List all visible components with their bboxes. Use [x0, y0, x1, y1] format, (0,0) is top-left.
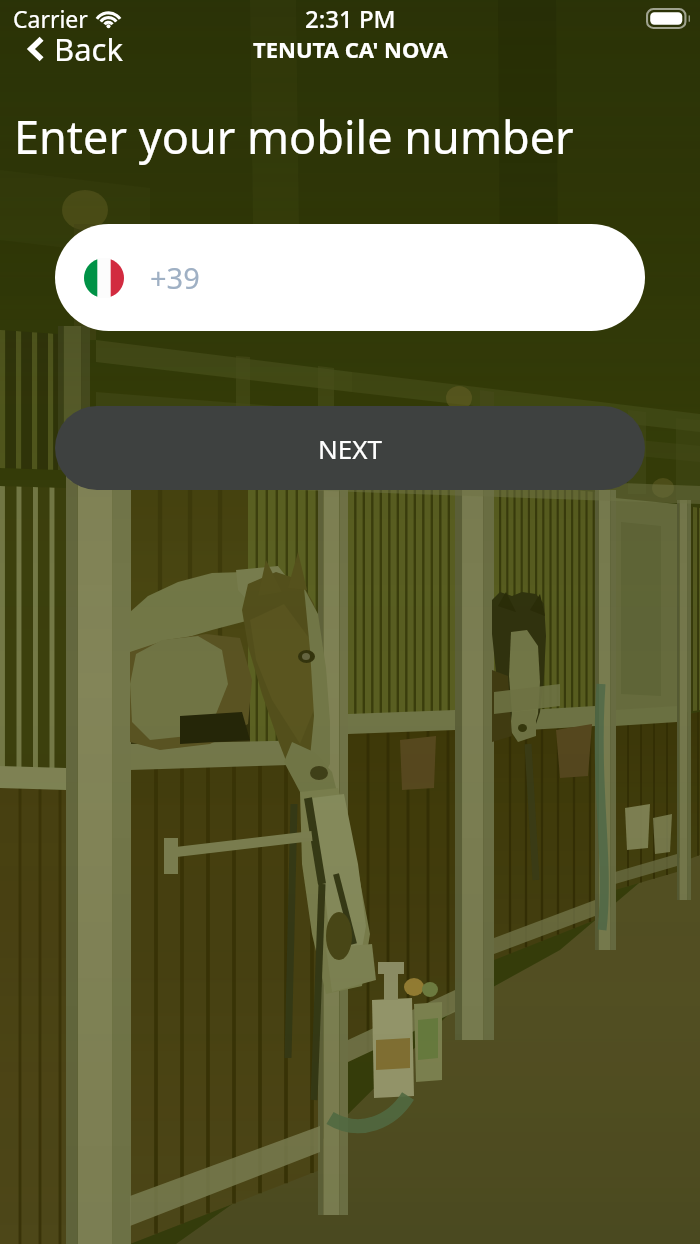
other: Battery — [646, 8, 690, 29]
staticText: Enter your mobile number — [14, 106, 574, 167]
other: Wi-Fi signal — [95, 9, 122, 28]
staticText: TENUTA CA' NOVA — [253, 34, 448, 64]
button[interactable]: NEXT — [55, 406, 645, 490]
staticText: 2:31 PM — [305, 2, 396, 35]
staticText: NEXT — [318, 431, 382, 466]
staticText: +39 — [150, 258, 200, 297]
staticText: Carrier — [13, 3, 88, 34]
staticText: Back — [54, 28, 123, 70]
button[interactable]: +39 — [55, 224, 645, 331]
button[interactable]: Back — [26, 28, 123, 70]
